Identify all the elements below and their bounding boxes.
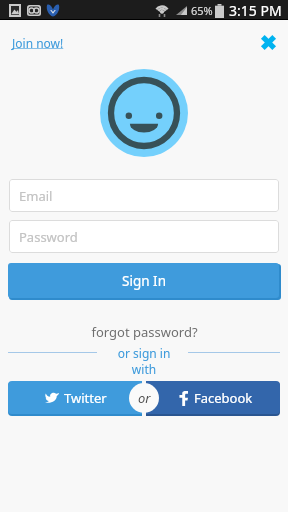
staticText: or sign in with [114, 345, 174, 377]
staticText: Join now! [12, 35, 64, 51]
button[interactable]: Join now! [11, 34, 65, 52]
staticText: forgot password? [91, 323, 198, 341]
staticText: Password [19, 228, 78, 246]
staticText: Facebook [194, 389, 253, 407]
staticText: 3:15 PM [229, 1, 282, 20]
button[interactable]: Password [9, 220, 279, 253]
staticText: 65% [191, 3, 213, 18]
button[interactable]: Facebook [146, 381, 280, 414]
staticText: Email [19, 187, 53, 205]
staticText: Twitter [64, 389, 107, 407]
button[interactable]: Twitter [8, 381, 142, 414]
staticText: or [138, 389, 151, 407]
staticText: Sign In [122, 272, 166, 290]
button[interactable]: Email [9, 179, 279, 212]
button[interactable]: forgot password? [88, 323, 200, 341]
button[interactable]: Sign In [8, 263, 279, 298]
button[interactable]: Close [256, 30, 280, 54]
